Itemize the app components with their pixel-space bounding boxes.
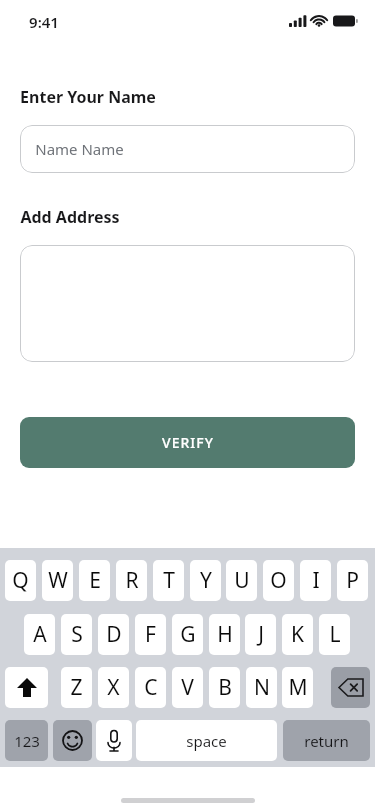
button[interactable]: P: [337, 560, 368, 601]
staticText: G: [180, 620, 196, 649]
button[interactable]: O: [263, 560, 294, 601]
button[interactable]: F: [135, 614, 166, 655]
staticText: return: [304, 731, 349, 751]
button[interactable]: D: [98, 614, 129, 655]
staticText: T: [163, 566, 175, 595]
button[interactable]: L: [319, 614, 350, 655]
staticText: S: [71, 620, 83, 649]
button[interactable]: J: [245, 614, 276, 655]
staticText: Add Address: [20, 206, 120, 228]
button[interactable]: X: [98, 667, 129, 708]
staticText: K: [291, 620, 304, 649]
button[interactable]: E: [79, 560, 110, 601]
button[interactable]: A: [24, 614, 55, 655]
staticText: E: [89, 566, 101, 595]
button[interactable]: M: [282, 667, 313, 708]
staticText: P: [346, 566, 359, 595]
staticText: A: [33, 620, 47, 649]
button[interactable]: U: [226, 560, 257, 601]
button[interactable]: B: [209, 667, 240, 708]
staticText: Name Name: [35, 139, 124, 159]
staticText: U: [234, 566, 250, 595]
staticText: N: [254, 673, 270, 702]
staticText: X: [107, 673, 120, 702]
staticText: R: [125, 566, 139, 595]
button[interactable]: N: [246, 667, 277, 708]
button[interactable]: T: [153, 560, 184, 601]
staticText: I: [312, 566, 320, 595]
button[interactable]: S: [61, 614, 92, 655]
button[interactable]: Emoji: [53, 720, 92, 761]
button[interactable]: I: [300, 560, 331, 601]
staticText: Z: [70, 673, 83, 702]
staticText: J: [258, 620, 264, 649]
button[interactable]: Dictate: [96, 720, 132, 761]
button[interactable]: Z: [61, 667, 92, 708]
button[interactable]: Y: [190, 560, 221, 601]
button[interactable]: V: [172, 667, 203, 708]
staticText: Enter Your Name: [20, 86, 156, 108]
button[interactable]: VERIFY: [20, 417, 355, 468]
staticText: C: [144, 673, 158, 702]
staticText: Y: [200, 566, 212, 595]
button[interactable]: 123: [5, 720, 48, 761]
staticText: W: [48, 566, 68, 595]
button[interactable]: Name Name: [20, 125, 355, 173]
staticText: 123: [14, 731, 40, 751]
button[interactable]: Shift: [5, 667, 48, 708]
staticText: O: [270, 566, 287, 595]
button[interactable]: return: [283, 720, 370, 761]
staticText: Q: [12, 566, 29, 595]
staticText: D: [106, 620, 122, 649]
button[interactable]: C: [135, 667, 166, 708]
button[interactable]: space: [136, 720, 277, 761]
button[interactable]: [20, 245, 355, 362]
staticText: F: [145, 620, 156, 649]
button[interactable]: G: [172, 614, 203, 655]
staticText: 9:41: [29, 12, 59, 32]
staticText: space: [186, 731, 227, 751]
staticText: H: [217, 620, 233, 649]
staticText: M: [288, 673, 308, 702]
button[interactable]: H: [209, 614, 240, 655]
button[interactable]: R: [116, 560, 147, 601]
button[interactable]: K: [282, 614, 313, 655]
button[interactable]: W: [42, 560, 73, 601]
staticText: VERIFY: [162, 433, 214, 452]
staticText: L: [329, 620, 341, 649]
staticText: V: [181, 673, 194, 702]
staticText: B: [218, 673, 232, 702]
button[interactable]: Q: [5, 560, 36, 601]
button[interactable]: Backspace: [331, 667, 370, 708]
